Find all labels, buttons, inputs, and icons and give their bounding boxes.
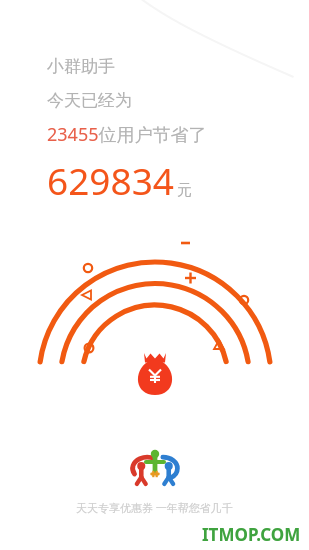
other: Savings illustration	[0, 0, 309, 550]
staticText: 天天专享优惠券 一年帮您省几千	[76, 500, 233, 515]
staticText: 今天已经为	[47, 90, 132, 111]
staticText: 元	[177, 181, 192, 200]
staticText: 629834	[47, 155, 174, 205]
other: Brand logo	[127, 446, 183, 486]
staticText: 小群助手	[47, 56, 115, 77]
staticText: 23455位用户节省了	[47, 122, 207, 147]
staticText: ITMOP.COM	[202, 523, 301, 546]
